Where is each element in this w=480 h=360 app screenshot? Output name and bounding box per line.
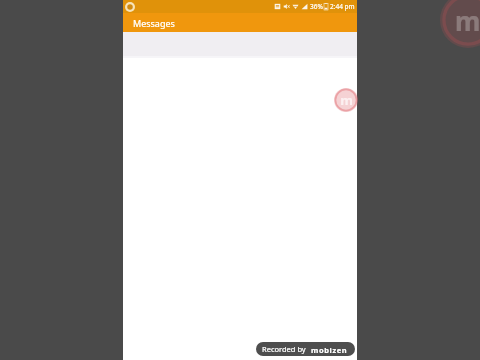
staticText: m (455, 3, 480, 38)
staticText: 36% (310, 2, 323, 11)
staticText: 2:44 pm (330, 2, 355, 11)
staticText: Recorded by (262, 344, 306, 354)
staticText: Messages (133, 17, 175, 29)
staticText: m (340, 91, 353, 109)
staticText: mobizen (311, 345, 348, 353)
button[interactable]: Messages (123, 13, 357, 32)
